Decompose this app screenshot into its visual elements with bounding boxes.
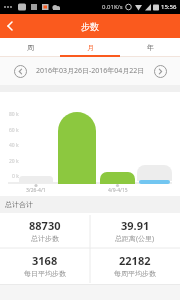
staticText: 总计合计 [5,200,33,209]
button[interactable]: 22182 [90,248,180,283]
staticText: 15:56 [161,3,177,11]
staticText: 40 k [9,142,19,149]
staticText: 39.91 [121,218,150,233]
button[interactable]: 月 [60,38,120,57]
button[interactable]: 3168 [0,248,90,283]
staticText: 总距离(公里) [115,234,155,244]
staticText: 年 [147,43,154,52]
staticText: 3/26-4/1 [26,187,46,194]
staticText: 总计步数 [31,234,59,243]
button[interactable]: 88730 [0,213,90,248]
staticText: 80 k [9,111,19,118]
staticText: 22182 [119,253,151,268]
staticText: 2016年03月26日-2016年04月22日 [36,66,145,76]
button[interactable] [0,14,20,38]
button[interactable] [13,57,27,85]
button[interactable]: 年 [120,38,180,57]
button[interactable]: 周 [0,38,60,57]
button[interactable] [153,57,167,85]
staticText: 周 [27,43,34,52]
staticText: 3168 [32,253,58,268]
button[interactable]: 39.91 [90,213,180,248]
staticText: 月 [87,43,94,52]
staticText: 每日平均步数 [24,269,66,278]
staticText: 60 k [9,127,19,134]
staticText: 每周平均步数 [114,269,156,278]
staticText: 步数 [81,21,99,32]
staticText: 88730 [29,218,61,233]
staticText: 0 k [12,173,19,180]
staticText: 0.01K/s [102,3,123,11]
staticText: 4/9-4/15 [108,187,128,194]
staticText: 20 k [9,158,19,165]
